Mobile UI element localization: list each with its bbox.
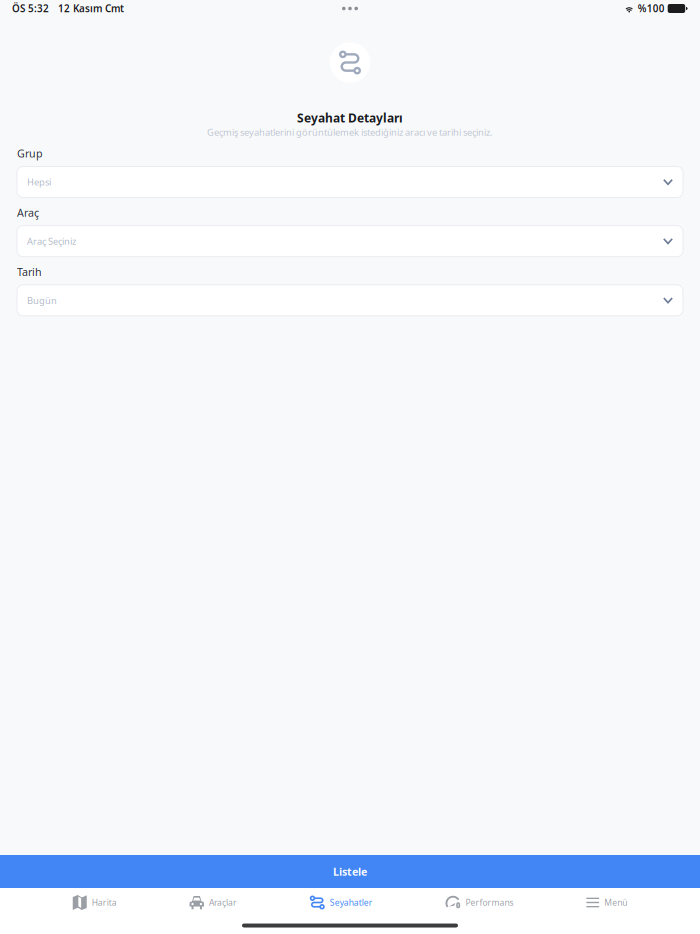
staticText: Grup: [17, 146, 43, 160]
button[interactable]: Performans: [445, 888, 513, 916]
staticText: Listele: [333, 864, 367, 879]
staticText: Seyahatler: [330, 897, 373, 908]
button[interactable]: Hepsi: [17, 166, 683, 197]
button[interactable]: Listele: [0, 855, 700, 888]
staticText: Seyahat Detayları: [297, 110, 403, 126]
button[interactable]: Seyahatler: [310, 888, 373, 916]
staticText: Araçlar: [209, 897, 237, 908]
staticText: Tarih: [17, 265, 42, 279]
staticText: Geçmiş seyahatlerini görüntülemek istedi…: [207, 126, 493, 138]
staticText: ÖS 5:32 12 Kasım Cmt: [12, 2, 124, 15]
staticText: Bugün: [27, 294, 57, 306]
button[interactable]: Harita: [73, 888, 117, 916]
button[interactable]: Araç Seçiniz: [17, 226, 683, 257]
staticText: %100: [638, 2, 665, 15]
staticText: Harita: [92, 897, 117, 908]
staticText: Araç: [17, 205, 39, 220]
button[interactable]: Araçlar: [189, 888, 237, 916]
button[interactable]: Bugün: [17, 285, 683, 316]
button[interactable]: Menü: [586, 888, 627, 916]
staticText: Araç Seçiniz: [27, 235, 76, 247]
staticText: Menü: [604, 897, 627, 908]
staticText: Performans: [465, 897, 513, 908]
staticText: Hepsi: [27, 176, 51, 188]
